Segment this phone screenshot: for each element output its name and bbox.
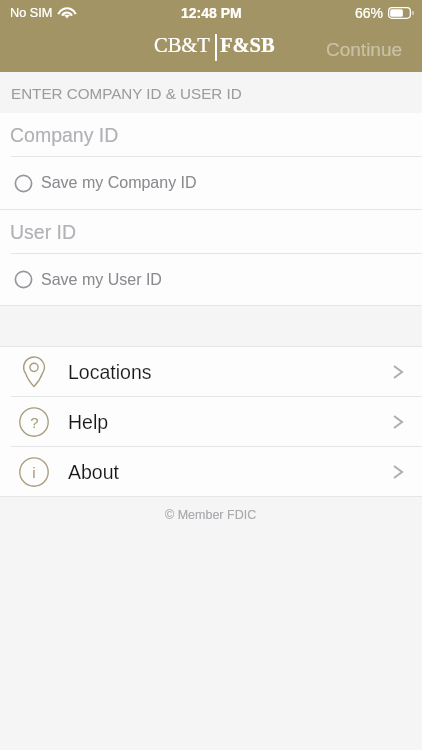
button[interactable]: User ID <box>0 210 422 253</box>
staticText: © Member FDIC <box>165 508 257 522</box>
staticText: Save my User ID <box>41 271 162 289</box>
staticText: ENTER COMPANY ID & USER ID <box>11 85 242 102</box>
button[interactable]: ? <box>0 397 422 446</box>
staticText: i <box>32 464 36 481</box>
staticText: Help <box>68 411 109 433</box>
other: Locations <box>19 357 49 387</box>
staticText: 66% <box>355 5 384 21</box>
staticText: Save my Company ID <box>41 174 197 192</box>
button[interactable]: Continue <box>307 29 422 70</box>
staticText: About <box>68 461 119 483</box>
staticText: User ID <box>10 221 77 243</box>
other: Battery <box>388 7 414 19</box>
staticText: No SIM <box>10 6 53 20</box>
staticText: Locations <box>68 361 152 383</box>
staticText: 12:48 PM <box>181 5 242 21</box>
button[interactable]: Locations <box>0 347 422 396</box>
button[interactable]: Company ID <box>0 113 422 156</box>
staticText: F&SB <box>220 34 275 57</box>
button[interactable]: Save my User ID <box>0 254 422 305</box>
other: Wi-Fi <box>58 2 76 16</box>
staticText: Company ID <box>10 124 119 146</box>
staticText: Continue <box>326 39 403 60</box>
staticText: CB&T <box>154 34 210 57</box>
staticText: ? <box>30 414 39 431</box>
button[interactable]: Save my Company ID <box>0 157 422 209</box>
button[interactable]: i <box>0 447 422 496</box>
